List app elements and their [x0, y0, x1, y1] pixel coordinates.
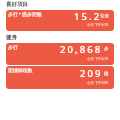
staticText: 公里	[100, 13, 109, 19]
button[interactable]: 步行	[6, 43, 114, 65]
staticText: 健身	[6, 34, 17, 41]
staticText: 209	[80, 67, 103, 80]
staticText: 爬樓梯段數	[8, 67, 33, 73]
staticText: 今天 下午2:58	[87, 80, 109, 85]
button[interactable]: 步行 • 跑步距離	[6, 10, 114, 31]
staticText: 步行 • 跑步距離	[8, 11, 42, 18]
staticText: 今天 下午4:19	[87, 22, 109, 27]
staticText: 20,868	[60, 43, 103, 56]
staticText: 15.2	[74, 10, 102, 23]
staticText: 今天 下午4:19	[87, 56, 109, 61]
staticText: 樓	[104, 71, 109, 77]
staticText: 喜好項目	[6, 1, 28, 8]
staticText: 步	[104, 46, 109, 52]
staticText: 步行	[8, 44, 18, 50]
button[interactable]: 爬樓梯段數	[6, 66, 114, 89]
